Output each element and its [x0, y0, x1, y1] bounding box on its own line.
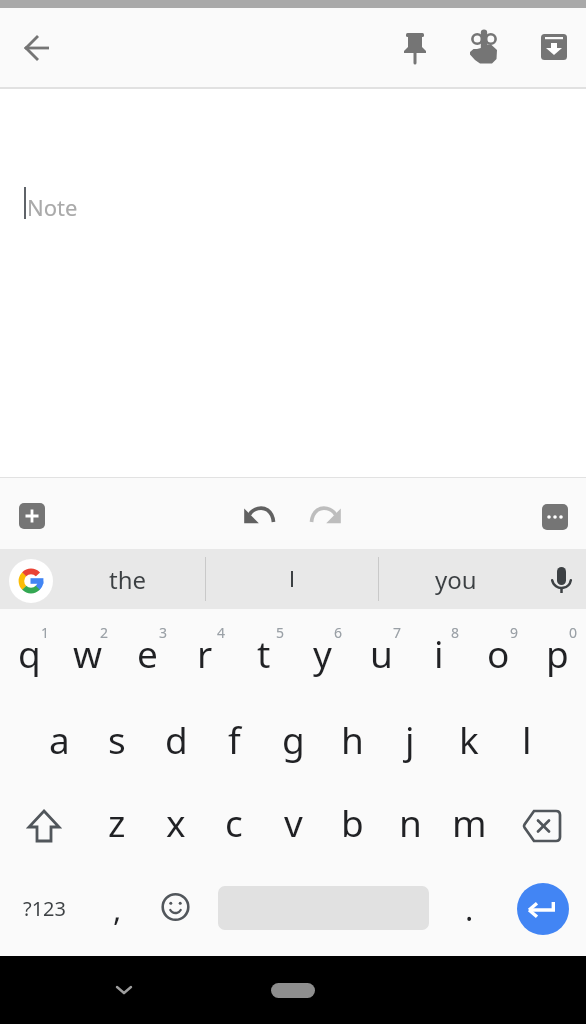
staticText: o: [487, 628, 510, 678]
button[interactable]: [460, 24, 508, 72]
staticText: u: [370, 628, 393, 678]
button[interactable]: w: [59, 623, 117, 683]
button[interactable]: u: [352, 623, 410, 683]
button[interactable]: ,: [88, 879, 146, 939]
button[interactable]: [517, 883, 569, 935]
staticText: 9: [510, 623, 519, 642]
staticText: j: [405, 714, 415, 764]
staticText: y: [313, 628, 332, 678]
staticText: .: [465, 888, 474, 930]
button[interactable]: d: [147, 709, 205, 769]
button[interactable]: [237, 497, 277, 537]
staticText: 5: [276, 623, 285, 642]
staticText: i: [434, 628, 444, 678]
staticText: ?123: [23, 895, 66, 922]
button[interactable]: [8, 796, 80, 856]
button[interactable]: [146, 877, 206, 937]
staticText: h: [341, 714, 364, 764]
staticText: s: [108, 714, 126, 764]
staticText: r: [197, 628, 213, 678]
button[interactable]: j: [381, 709, 439, 769]
button[interactable]: n: [381, 792, 439, 852]
staticText: 0: [569, 623, 578, 642]
staticText: k: [459, 714, 479, 764]
button[interactable]: [506, 796, 578, 856]
button[interactable]: Note: [0, 89, 586, 477]
button[interactable]: [539, 557, 583, 601]
staticText: ,: [113, 888, 122, 930]
staticText: Note: [27, 192, 78, 222]
staticText: c: [225, 797, 243, 847]
staticText: v: [284, 797, 303, 847]
staticText: d: [165, 714, 188, 764]
staticText: t: [257, 628, 271, 678]
button[interactable]: s: [88, 709, 146, 769]
button[interactable]: g: [264, 709, 322, 769]
staticText: p: [546, 628, 569, 678]
button[interactable]: [391, 24, 439, 72]
button[interactable]: e: [118, 623, 176, 683]
button[interactable]: .: [440, 879, 498, 939]
button[interactable]: you: [386, 549, 526, 609]
button[interactable]: a: [30, 709, 88, 769]
button[interactable]: y: [293, 623, 351, 683]
staticText: q: [18, 628, 41, 678]
button[interactable]: the: [60, 549, 195, 609]
button[interactable]: x: [147, 792, 205, 852]
staticText: g: [282, 714, 305, 764]
button[interactable]: p: [528, 623, 586, 683]
staticText: b: [341, 797, 364, 847]
staticText: f: [228, 714, 241, 764]
button[interactable]: f: [205, 709, 263, 769]
button[interactable]: z: [88, 792, 146, 852]
button[interactable]: c: [205, 792, 263, 852]
staticText: 2: [100, 623, 109, 642]
button[interactable]: [542, 504, 568, 530]
staticText: the: [109, 563, 147, 596]
staticText: z: [108, 797, 126, 847]
button[interactable]: ?123: [15, 878, 73, 938]
button[interactable]: q: [0, 623, 58, 683]
button[interactable]: m: [440, 792, 498, 852]
staticText: x: [166, 797, 186, 847]
staticText: 4: [217, 623, 226, 642]
button[interactable]: [530, 24, 578, 72]
staticText: you: [435, 563, 477, 596]
staticText: 7: [393, 623, 402, 642]
button[interactable]: [9, 559, 53, 603]
staticText: a: [49, 714, 70, 764]
button[interactable]: [308, 497, 348, 537]
staticText: 3: [159, 623, 168, 642]
staticText: w: [73, 628, 103, 678]
staticText: e: [137, 628, 158, 678]
staticText: m: [452, 797, 487, 847]
button[interactable]: i: [410, 623, 468, 683]
button[interactable]: [19, 503, 45, 529]
button[interactable]: [271, 983, 315, 998]
button[interactable]: [213, 549, 371, 609]
button[interactable]: h: [323, 709, 381, 769]
staticText: l: [522, 714, 532, 764]
staticText: 8: [451, 623, 460, 642]
button[interactable]: [104, 970, 144, 1010]
staticText: n: [399, 797, 422, 847]
button[interactable]: l: [498, 709, 556, 769]
button[interactable]: b: [323, 792, 381, 852]
button[interactable]: v: [264, 792, 322, 852]
button[interactable]: k: [440, 709, 498, 769]
button[interactable]: r: [176, 623, 234, 683]
button[interactable]: t: [235, 623, 293, 683]
button[interactable]: [13, 24, 61, 72]
button[interactable]: o: [469, 623, 527, 683]
staticText: 6: [334, 623, 343, 642]
staticText: 1: [41, 623, 50, 642]
